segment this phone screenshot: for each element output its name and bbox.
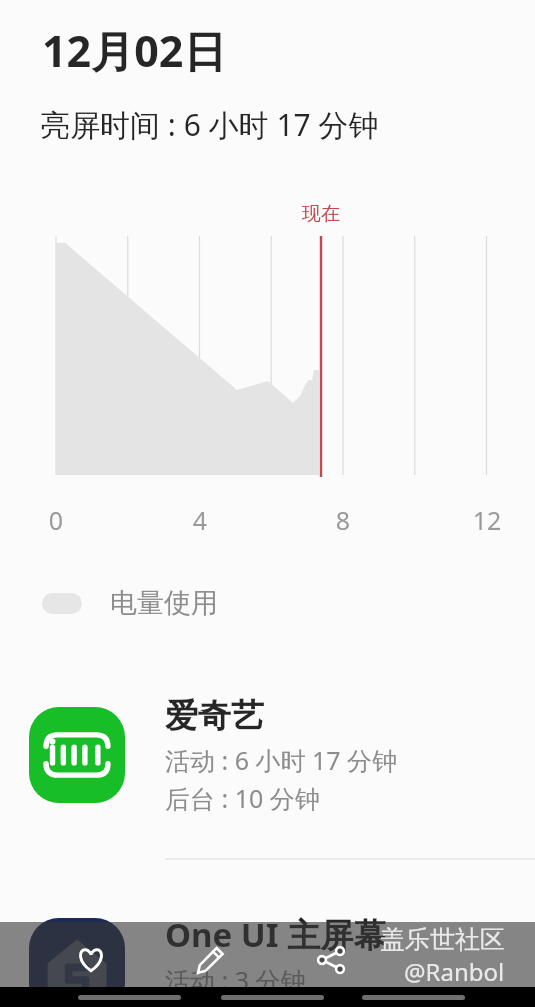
staticText: 爱奇艺 bbox=[165, 695, 264, 737]
staticText: 亮屏时间 : 6 小时 17 分钟 bbox=[40, 104, 379, 145]
staticText: 现在 bbox=[288, 202, 354, 226]
button[interactable]: 爱奇艺 bbox=[0, 680, 535, 830]
button[interactable]: Edit bbox=[186, 936, 234, 984]
button[interactable]: One UI 主屏幕 bbox=[0, 896, 535, 1007]
button[interactable]: Share bbox=[307, 936, 355, 984]
staticText: 8 bbox=[318, 503, 368, 537]
staticText: 电量使用 bbox=[110, 586, 218, 620]
staticText: 4 bbox=[175, 503, 225, 537]
staticText: 后台 : 10 分钟 bbox=[165, 781, 320, 815]
staticText: @Ranbol bbox=[404, 955, 505, 988]
staticText: 盖乐世社区 bbox=[380, 924, 505, 955]
button[interactable]: Like bbox=[67, 936, 115, 984]
button[interactable]: 电量使用 bbox=[42, 586, 226, 620]
staticText: One UI 主屏幕 bbox=[165, 912, 387, 957]
staticText: 活动 : 6 小时 17 分钟 bbox=[165, 743, 398, 777]
staticText: 12 bbox=[462, 503, 512, 537]
staticText: 0 bbox=[31, 503, 81, 537]
staticText: 活动 : 3 分钟 bbox=[165, 963, 306, 997]
staticText: 12月02日 bbox=[42, 21, 227, 80]
